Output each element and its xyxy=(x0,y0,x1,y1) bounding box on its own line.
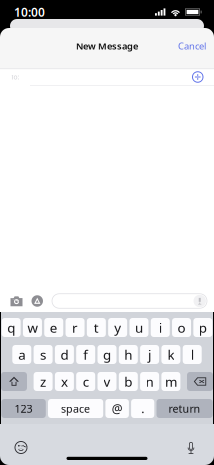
button[interactable]: u xyxy=(129,318,148,337)
staticText: New Message xyxy=(76,40,138,52)
staticText: l xyxy=(191,346,194,363)
button[interactable]: c xyxy=(76,372,95,391)
button[interactable]: Apps xyxy=(27,291,47,311)
staticText: s xyxy=(40,346,46,363)
button[interactable]: Emoji xyxy=(10,437,32,458)
staticText: Cancel xyxy=(178,40,206,52)
staticText: v xyxy=(103,373,110,390)
button[interactable]: j xyxy=(140,345,159,364)
staticText: . xyxy=(141,400,144,416)
staticText: y xyxy=(114,319,121,336)
button[interactable]: 123 xyxy=(1,399,46,418)
staticText: c xyxy=(83,373,89,390)
staticText: k xyxy=(167,346,174,363)
staticText: z xyxy=(40,373,46,390)
staticText: x xyxy=(61,373,68,390)
button[interactable]: @ xyxy=(105,399,129,418)
button[interactable]: f xyxy=(76,345,95,364)
button[interactable]: k xyxy=(161,345,180,364)
staticText: return xyxy=(169,401,201,416)
staticText: r xyxy=(72,319,78,336)
button[interactable]: v xyxy=(97,372,116,391)
button[interactable]: t xyxy=(87,318,106,337)
button[interactable]: h xyxy=(119,345,138,364)
button[interactable]: return xyxy=(156,399,213,418)
button[interactable]: e xyxy=(44,318,63,337)
button[interactable]: o xyxy=(172,318,191,337)
staticText: i xyxy=(159,319,162,336)
button[interactable]: Audio message xyxy=(193,295,206,307)
button[interactable]: m xyxy=(161,372,180,391)
button[interactable]: Camera xyxy=(6,292,26,310)
button[interactable]: z xyxy=(34,372,53,391)
button[interactable]: s xyxy=(34,345,53,364)
staticText: g xyxy=(103,346,111,363)
button[interactable]: space xyxy=(48,399,103,418)
staticText: p xyxy=(199,319,207,336)
staticText: j xyxy=(148,346,151,363)
button[interactable]: i xyxy=(151,318,170,337)
staticText: m xyxy=(165,373,177,390)
button[interactable]: g xyxy=(97,345,116,364)
staticText: w xyxy=(27,319,37,336)
button[interactable]: Shift xyxy=(1,372,27,391)
staticText: e xyxy=(50,319,58,336)
button[interactable]: b xyxy=(119,372,138,391)
button[interactable]: w xyxy=(23,318,42,337)
staticText: a xyxy=(18,346,25,363)
button[interactable]: x xyxy=(55,372,74,391)
button[interactable]: Add contact xyxy=(189,69,206,85)
staticText: n xyxy=(146,373,154,390)
staticText: b xyxy=(124,373,132,390)
button[interactable]: r xyxy=(66,318,85,337)
staticText: o xyxy=(178,319,186,336)
button[interactable]: . xyxy=(131,399,154,418)
button[interactable]: l xyxy=(183,345,202,364)
staticText: q xyxy=(7,319,15,336)
staticText: @ xyxy=(112,400,123,416)
button[interactable]: d xyxy=(55,345,74,364)
button[interactable]: Dictation xyxy=(182,437,199,458)
button[interactable]: y xyxy=(108,318,127,337)
staticText: space xyxy=(61,401,90,416)
button[interactable]: q xyxy=(2,318,21,337)
button[interactable]: Delete xyxy=(187,372,213,391)
staticText: u xyxy=(135,319,143,336)
button[interactable]: n xyxy=(140,372,159,391)
button[interactable]: Cancel xyxy=(170,34,214,58)
button[interactable]: p xyxy=(193,318,212,337)
button[interactable]: a xyxy=(12,345,31,364)
staticText: h xyxy=(124,346,132,363)
staticText: 10:00 xyxy=(14,4,45,20)
staticText: t xyxy=(94,319,99,336)
staticText: f xyxy=(83,346,88,363)
staticText: 123 xyxy=(14,401,32,416)
staticText: d xyxy=(60,346,68,363)
staticText: To: xyxy=(10,73,19,81)
